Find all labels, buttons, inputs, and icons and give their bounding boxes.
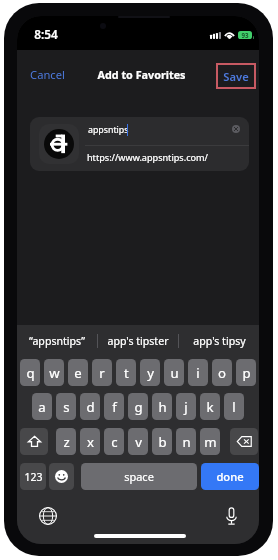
button[interactable]: “appsntips” [17, 325, 97, 357]
staticText: p [242, 364, 251, 382]
staticText: 8:54 [34, 26, 58, 42]
button[interactable]: k [200, 393, 220, 420]
button[interactable]: Cancel [25, 61, 70, 88]
button[interactable]: space [81, 463, 197, 490]
staticText: m [204, 433, 217, 451]
button[interactable]: Emoji keyboard [49, 463, 74, 490]
button[interactable]: Dictation [221, 506, 241, 526]
button[interactable]: w [44, 359, 64, 386]
staticText: u [170, 364, 179, 382]
button[interactable]: t [116, 359, 136, 386]
staticText: space [124, 469, 154, 484]
button[interactable]: Save [216, 63, 256, 89]
staticText: Save [223, 69, 249, 84]
button[interactable]: x [80, 428, 100, 455]
button[interactable]: a [32, 393, 52, 420]
staticText: l [232, 398, 236, 416]
button[interactable]: u [164, 359, 184, 386]
staticText: q [26, 364, 35, 382]
staticText: Cancel [30, 67, 65, 82]
staticText: r [99, 364, 105, 382]
button[interactable]: i [188, 359, 208, 386]
staticText: v [135, 433, 142, 451]
staticText: 93 [241, 31, 249, 39]
button[interactable]: o [212, 359, 232, 386]
staticText: “appsntips” [29, 334, 85, 348]
button[interactable]: r [92, 359, 112, 386]
button[interactable]: p [236, 359, 256, 386]
staticText: s [63, 398, 70, 416]
staticText: g [134, 398, 143, 416]
staticText: 123 [24, 470, 43, 484]
staticText: h [158, 398, 167, 416]
button[interactable]: f [104, 393, 124, 420]
button[interactable]: g [128, 393, 148, 420]
staticText: n [182, 433, 191, 451]
staticText: c [111, 433, 118, 451]
button[interactable]: h [152, 393, 172, 420]
staticText: d [86, 398, 95, 416]
staticText: z [63, 433, 70, 451]
staticText: app's tipster [107, 334, 169, 348]
button[interactable]: b [152, 428, 172, 455]
staticText: app's tipsy [193, 334, 246, 348]
button[interactable]: q [20, 359, 40, 386]
button[interactable]: v [128, 428, 148, 455]
staticText: x [87, 433, 94, 451]
button[interactable]: s [56, 393, 76, 420]
staticText: j [184, 398, 188, 416]
staticText: w [49, 364, 60, 382]
staticText: Add to Favorites [97, 67, 186, 82]
staticText: i [196, 364, 200, 382]
button[interactable]: app's tipsy [179, 325, 259, 357]
staticText: appsntips [88, 124, 129, 136]
staticText: e [74, 364, 82, 382]
staticText: b [158, 433, 167, 451]
button[interactable]: Clear text [232, 125, 240, 133]
button[interactable]: Backspace [230, 428, 258, 455]
button[interactable]: Change keyboard [38, 506, 58, 526]
button[interactable]: m [200, 428, 220, 455]
button[interactable]: c [104, 428, 124, 455]
button[interactable]: n [176, 428, 196, 455]
staticText: o [218, 364, 226, 382]
button[interactable]: e [68, 359, 88, 386]
button[interactable]: d [80, 393, 100, 420]
button[interactable]: z [56, 428, 76, 455]
button[interactable]: Shift [20, 428, 48, 455]
button[interactable]: app's tipster [98, 325, 178, 357]
button[interactable]: l [224, 393, 244, 420]
staticText: k [206, 398, 214, 416]
button[interactable]: 123 [20, 463, 46, 490]
staticText: y [147, 364, 154, 382]
staticText: f [112, 398, 117, 416]
staticText: a [38, 398, 46, 416]
staticText: t [124, 364, 129, 382]
button[interactable]: j [176, 393, 196, 420]
staticText: done [216, 469, 244, 484]
button[interactable]: done [201, 463, 259, 490]
button[interactable]: y [140, 359, 160, 386]
staticText: https://www.appsntips.com/ [87, 151, 208, 163]
